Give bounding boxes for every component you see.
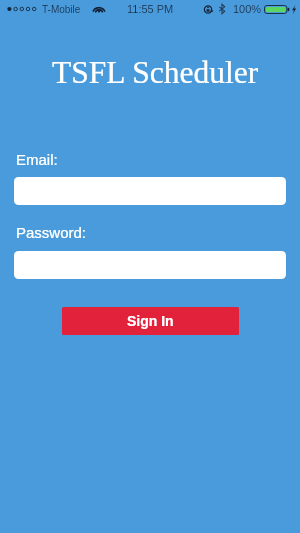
staticText: Password: xyxy=(16,224,87,241)
staticText: TSFL Scheduler xyxy=(52,55,259,90)
staticText: Sign In xyxy=(127,313,174,329)
button[interactable]: Sign In xyxy=(62,307,239,335)
staticText: 11:55 PM xyxy=(127,3,174,15)
staticText: T-Mobile xyxy=(42,4,81,15)
button[interactable]: Email input xyxy=(14,177,286,205)
staticText: 100% xyxy=(233,3,262,15)
staticText: Email: xyxy=(16,151,58,168)
button[interactable]: Password input xyxy=(14,251,286,279)
